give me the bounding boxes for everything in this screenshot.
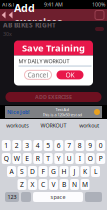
button[interactable]: C: [38, 179, 47, 190]
staticText: M: [82, 180, 88, 189]
button[interactable]: ADD EXERCISE: [5, 92, 101, 102]
staticText: O: [88, 154, 93, 163]
button[interactable]: W: [12, 153, 21, 164]
button[interactable]: Back: [0, 9, 14, 21]
staticText: ADD EXERCISE: [35, 93, 72, 101]
staticText: Add exercises: [14, 1, 62, 29]
staticText: F: [41, 167, 44, 176]
staticText: 30x: [3, 30, 12, 37]
button[interactable]: E: [23, 153, 32, 164]
button[interactable]: 3: [23, 140, 32, 151]
button[interactable]: F: [38, 166, 47, 177]
button[interactable]: V: [49, 179, 58, 190]
staticText: L: [94, 167, 97, 176]
staticText: G: [51, 167, 56, 176]
button[interactable]: T: [44, 153, 53, 164]
button[interactable]: 2: [12, 140, 21, 151]
button[interactable]: J: [70, 166, 79, 177]
staticText: V: [51, 180, 55, 189]
button[interactable]: H: [59, 166, 68, 177]
staticText: I: [79, 154, 81, 163]
button[interactable]: 6: [54, 140, 63, 151]
staticText: Test Ad: [55, 107, 68, 112]
button[interactable]: Save: [95, 10, 104, 19]
button[interactable]: 5: [44, 140, 53, 151]
button[interactable]: 0: [96, 140, 105, 151]
staticText: 8: [78, 141, 82, 150]
staticText: Z: [20, 180, 24, 189]
staticText: 2: [15, 141, 19, 150]
button[interactable]: G: [49, 166, 58, 177]
staticText: U: [67, 154, 72, 163]
staticText: workouts: [6, 122, 29, 129]
button[interactable]: 1: [2, 140, 11, 151]
staticText: C: [41, 180, 45, 189]
button[interactable]: U: [65, 153, 74, 164]
staticText: B: [62, 180, 66, 189]
staticText: OK: [65, 70, 74, 79]
staticText: E: [25, 154, 29, 163]
staticText: D: [30, 167, 35, 176]
staticText: K: [83, 167, 87, 176]
button[interactable]: B: [59, 179, 68, 190]
button[interactable]: N: [70, 179, 79, 190]
button[interactable]: L: [91, 166, 100, 177]
staticText: W: [14, 154, 20, 163]
staticText: Save Training: [22, 42, 85, 54]
staticText: S: [20, 167, 24, 176]
staticText: MY DAILY WORKOUT: [18, 58, 69, 65]
button[interactable]: K: [80, 166, 89, 177]
staticText: A: [9, 167, 13, 176]
staticText: 100%: [92, 1, 105, 8]
staticText: 6: [57, 141, 61, 150]
staticText: T: [46, 154, 50, 163]
button[interactable]: 8: [75, 140, 84, 151]
staticText: R: [36, 154, 40, 163]
button[interactable]: Cancel: [24, 70, 51, 79]
staticText: 1: [4, 141, 8, 150]
button[interactable]: 4: [33, 140, 42, 151]
staticText: H: [61, 167, 66, 176]
button[interactable]: space: [33, 192, 83, 202]
staticText: 4: [36, 141, 40, 150]
staticText: J: [73, 167, 75, 176]
button[interactable]: O: [86, 153, 95, 164]
button[interactable]: R: [33, 153, 42, 164]
button[interactable]: 7: [65, 140, 74, 151]
button[interactable]: OK: [56, 70, 83, 79]
staticText: 3: [25, 141, 29, 150]
button[interactable]: I: [75, 153, 84, 164]
staticText: WORKOUT: [40, 122, 66, 129]
button[interactable]: Return: [85, 192, 102, 202]
button[interactable]: 123: [5, 192, 19, 202]
button[interactable]: D: [28, 166, 37, 177]
staticText: Cancel: [27, 70, 48, 79]
button[interactable]: 9: [86, 140, 95, 151]
staticText: Y: [57, 154, 61, 163]
staticText: 7: [67, 141, 71, 150]
button[interactable]: P: [96, 153, 105, 164]
staticText: workout: [79, 122, 99, 129]
button[interactable]: X: [28, 179, 37, 190]
staticText: N: [72, 180, 77, 189]
button[interactable]: S: [17, 166, 26, 177]
button[interactable]: A: [7, 166, 16, 177]
staticText: P: [99, 154, 103, 163]
button[interactable]: Q: [2, 153, 11, 164]
staticText: 0: [99, 141, 103, 150]
staticText: Q: [4, 154, 9, 163]
button[interactable]: M: [80, 179, 89, 190]
staticText: space: [50, 193, 65, 201]
staticText: 9: [88, 141, 92, 150]
staticText: AB BIKES RIGHT: [3, 20, 56, 29]
staticText: 9:41 AM: [44, 1, 63, 8]
staticText: 5: [46, 141, 50, 150]
button[interactable]: Y: [54, 153, 63, 164]
staticText: X: [30, 180, 34, 189]
staticText: This is a 120x50 test ad: [42, 112, 81, 117]
button[interactable]: Z: [17, 179, 26, 190]
staticText: AT&T: [2, 1, 15, 8]
staticText: Nice job!: [7, 108, 30, 116]
button[interactable]: Emoji: [21, 192, 31, 202]
staticText: 123: [7, 193, 16, 201]
